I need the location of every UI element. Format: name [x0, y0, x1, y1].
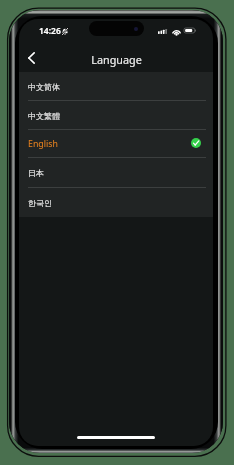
- staticText: 中文繁體: [28, 111, 60, 121]
- button[interactable]: Back: [20, 47, 42, 69]
- button[interactable]: 日本: [19, 157, 213, 187]
- staticText: Language: [91, 52, 142, 67]
- staticText: 한국인: [28, 198, 52, 208]
- button[interactable]: 한국인: [19, 187, 213, 217]
- button[interactable]: English: [19, 129, 213, 157]
- staticText: 14:26: [39, 25, 61, 37]
- staticText: 日本: [28, 168, 44, 178]
- staticText: 中文简体: [28, 82, 60, 92]
- staticText: English: [28, 138, 58, 150]
- button[interactable]: 中文简体: [19, 72, 213, 100]
- button[interactable]: 中文繁體: [19, 100, 213, 129]
